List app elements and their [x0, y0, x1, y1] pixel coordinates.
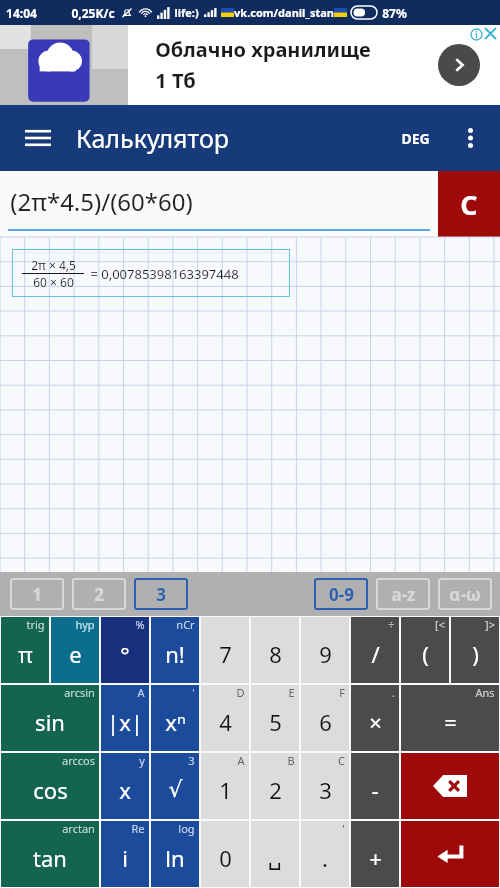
staticText: ° [120, 639, 130, 669]
staticText: 87% [382, 5, 407, 21]
button[interactable]: e [51, 617, 99, 683]
staticText: ÷ [388, 617, 395, 632]
button[interactable]: C [438, 171, 500, 237]
button[interactable]: + [351, 821, 399, 887]
staticText: arccos [62, 753, 95, 768]
button[interactable]: √ [151, 753, 199, 819]
button[interactable]: Enter [401, 821, 499, 887]
button[interactable]: sin [1, 685, 99, 751]
button[interactable]: × [351, 685, 399, 751]
staticText: - [371, 775, 379, 805]
staticText: tan [33, 843, 67, 873]
button[interactable]: tan [1, 821, 99, 887]
button[interactable]: 0 [201, 821, 249, 887]
staticText: D [236, 685, 245, 700]
button[interactable]: 0-9 [314, 578, 368, 610]
button[interactable]: = [401, 685, 499, 751]
staticText: 7 [219, 639, 232, 669]
staticText: e [69, 639, 82, 669]
button[interactable]: 8 [251, 617, 299, 683]
staticText: |x| [107, 707, 143, 737]
staticText: arctan [62, 821, 95, 836]
button[interactable]: . [301, 821, 349, 887]
button[interactable]: i [101, 821, 149, 887]
staticText: ␣ [268, 845, 282, 871]
staticText: π [18, 639, 33, 669]
button[interactable]: xⁿ [151, 685, 199, 751]
staticText: i [475, 29, 478, 40]
staticText: 14:04 [6, 5, 37, 21]
button[interactable]: 2π × 4,5 [12, 249, 290, 297]
staticText: (2π*4.5)/(60*60) [10, 185, 193, 218]
button[interactable]: 7 [201, 617, 249, 683]
button[interactable]: 3 [301, 753, 349, 819]
button[interactable]: Ad info [469, 27, 483, 41]
staticText: 2 [269, 775, 282, 805]
staticText: = 0,00785398163397448 [90, 265, 239, 283]
button[interactable]: 1 [201, 753, 249, 819]
staticText: √ [168, 777, 183, 803]
staticText: 0 [219, 843, 232, 873]
button[interactable]: α-ω [438, 578, 492, 610]
button[interactable]: ) [451, 617, 499, 683]
staticText: xⁿ [165, 707, 186, 737]
button[interactable]: Close ad [483, 26, 498, 41]
staticText: ' [342, 821, 345, 836]
staticText: Облачно хранилище [155, 36, 371, 63]
staticText: 1 Тб [155, 67, 196, 94]
button[interactable]: Menu [18, 118, 58, 158]
button[interactable]: n! [151, 617, 199, 683]
staticText: 9 [319, 639, 332, 669]
button[interactable]: ° [101, 617, 149, 683]
button[interactable]: 6 [301, 685, 349, 751]
staticText: α-ω [449, 583, 481, 606]
button[interactable]: / [351, 617, 399, 683]
button[interactable]: 2 [72, 578, 126, 610]
button[interactable]: ␣ [251, 821, 299, 887]
staticText: ' [192, 685, 195, 700]
button[interactable]: (2π*4.5)/(60*60) [0, 171, 438, 237]
staticText: 60 × 60 [33, 274, 74, 290]
staticText: 4 [219, 707, 232, 737]
staticText: × [369, 707, 382, 737]
staticText: E [288, 685, 295, 700]
staticText: / [371, 639, 380, 669]
button[interactable]: ln [151, 821, 199, 887]
button[interactable]: π [1, 617, 49, 683]
button[interactable]: 9 [301, 617, 349, 683]
staticText: A [237, 753, 245, 768]
button[interactable]: 2 [251, 753, 299, 819]
staticText: y [139, 753, 145, 768]
staticText: DEG [401, 129, 430, 148]
staticText: . [392, 685, 395, 700]
staticText: n! [165, 639, 185, 669]
staticText: % [135, 617, 145, 632]
staticText: 6 [319, 707, 332, 737]
button[interactable]: ( [401, 617, 449, 683]
staticText: B [287, 753, 295, 768]
button[interactable]: 5 [251, 685, 299, 751]
button[interactable]: More options [452, 120, 488, 156]
button[interactable]: x [101, 753, 149, 819]
button[interactable]: 4 [201, 685, 249, 751]
staticText: hyp [75, 617, 95, 632]
button[interactable]: Open ad [438, 44, 480, 86]
button[interactable]: 3 [134, 578, 188, 610]
staticText: ) [472, 639, 479, 669]
button[interactable]: - [351, 753, 399, 819]
staticText: i [122, 843, 128, 873]
button[interactable]: Backspace [401, 753, 499, 819]
staticText: 1 [32, 583, 42, 606]
staticText: 3 [319, 775, 332, 805]
staticText: 2 [94, 583, 104, 606]
staticText: Ans [475, 685, 495, 700]
button[interactable]: a-z [376, 578, 430, 610]
staticText: . [322, 843, 328, 873]
button[interactable]: cos [1, 753, 99, 819]
staticText: vk.com/danil_stan [234, 5, 334, 20]
staticText: C [460, 186, 478, 223]
button[interactable]: |x| [101, 685, 149, 751]
staticText: 3 [188, 753, 195, 768]
button[interactable]: DEG [393, 123, 438, 154]
button[interactable]: 1 [10, 578, 64, 610]
